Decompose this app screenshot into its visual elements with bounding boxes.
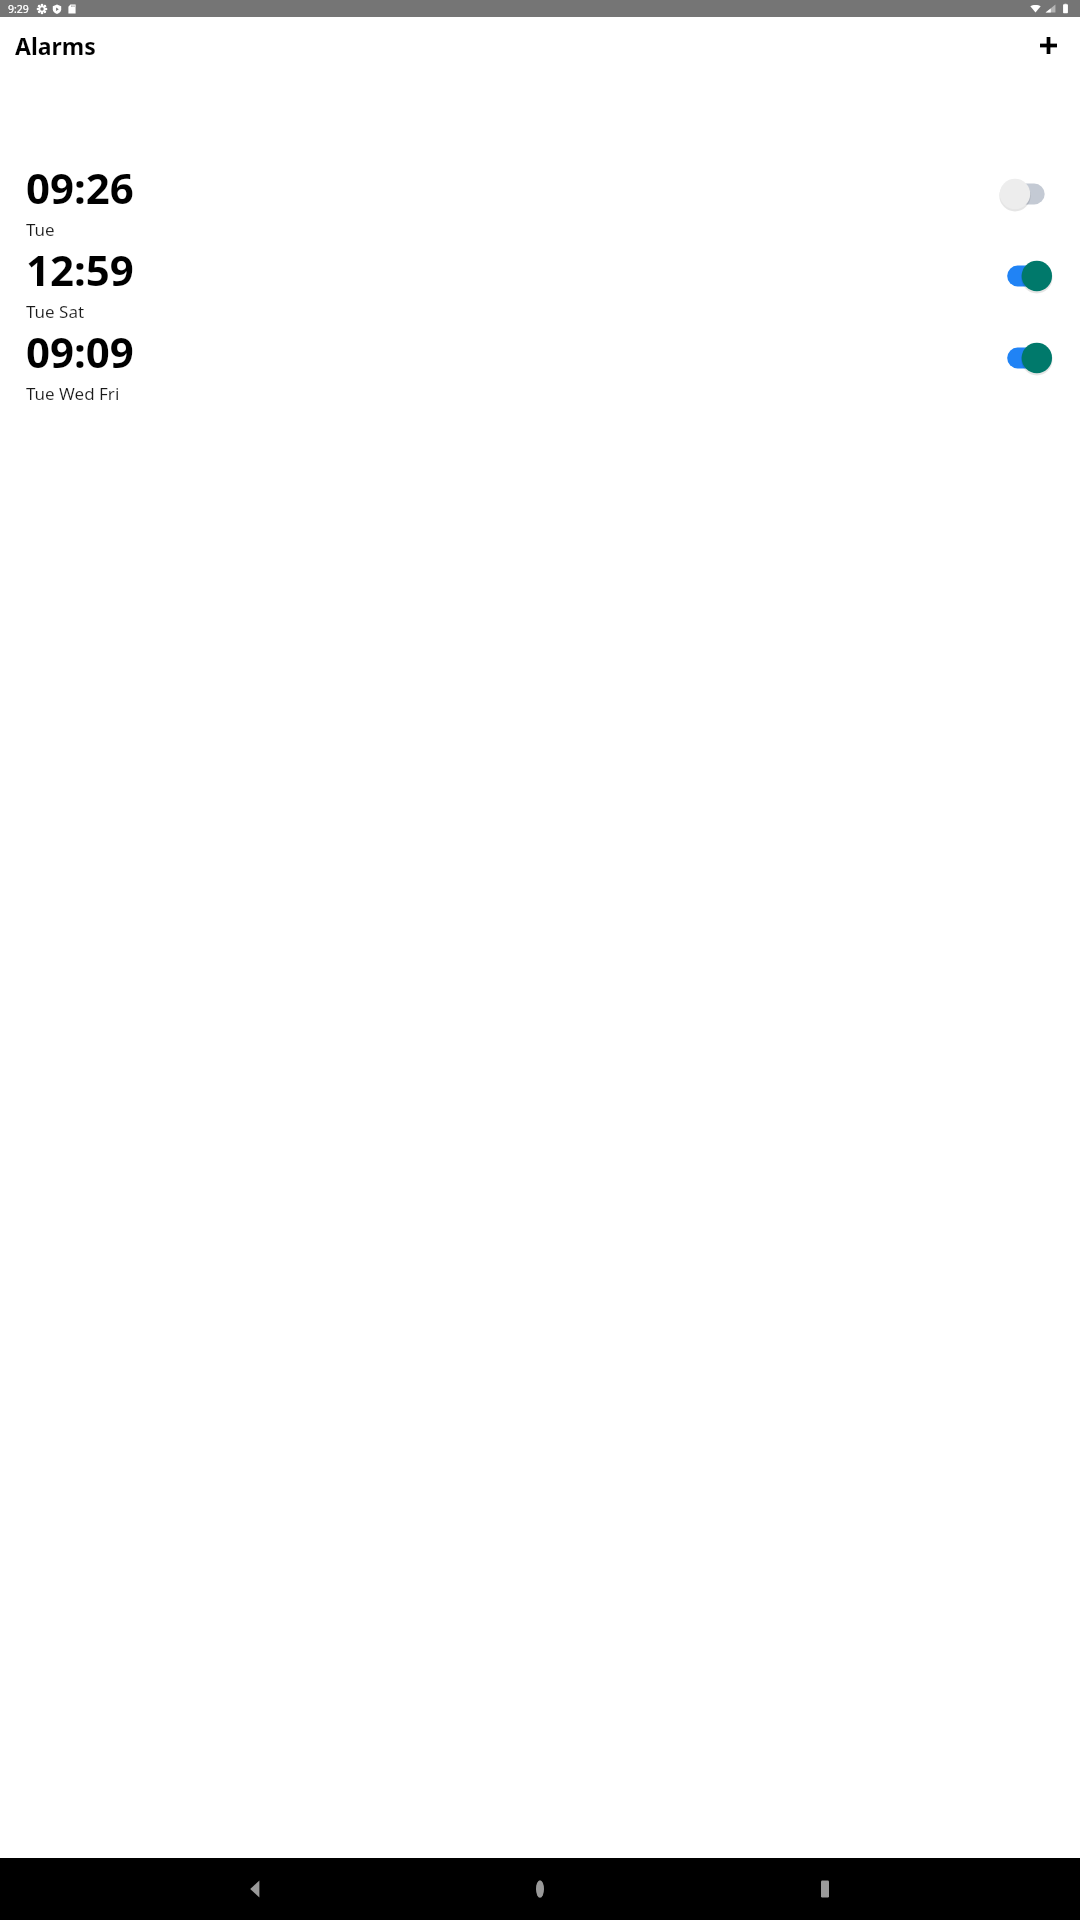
button[interactable]: Alarm on xyxy=(1001,256,1057,296)
button[interactable]: 12:59 xyxy=(0,241,1080,323)
staticText: 12:59 xyxy=(26,241,134,298)
staticText: Tue xyxy=(26,218,55,241)
staticText: 09:26 xyxy=(26,159,134,216)
button[interactable]: 09:09 xyxy=(0,323,1080,405)
staticText: 9:29 xyxy=(8,2,29,16)
staticText: 09:09 xyxy=(26,323,134,380)
button[interactable]: Alarm on xyxy=(1001,338,1057,378)
button[interactable]: Home xyxy=(510,1859,570,1919)
button[interactable]: 09:26 xyxy=(0,159,1080,241)
button[interactable]: Add alarm xyxy=(1030,27,1066,63)
button[interactable]: Recents xyxy=(795,1859,855,1919)
staticText: Tue Sat xyxy=(26,300,85,323)
staticText: Alarms xyxy=(15,30,96,61)
staticText: Tue Wed Fri xyxy=(26,382,120,405)
button[interactable]: Back xyxy=(225,1859,285,1919)
button[interactable]: Alarm off xyxy=(1001,174,1057,214)
